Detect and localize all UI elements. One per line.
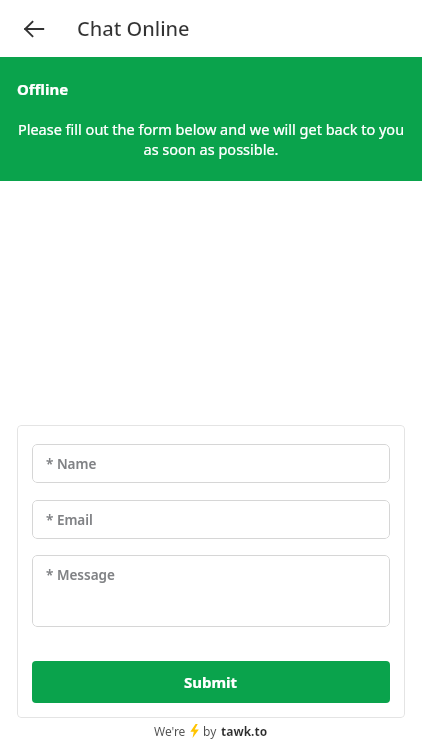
button[interactable]: * Email (32, 500, 390, 539)
button[interactable]: We're (0, 718, 422, 744)
button[interactable]: * Name (32, 444, 390, 483)
button[interactable]: * Message (32, 555, 390, 627)
staticText: Please fill out the form below and we wi… (10, 119, 412, 160)
staticText: by (203, 723, 217, 739)
staticText: Submit (184, 672, 238, 692)
button[interactable]: Back (14, 9, 54, 49)
staticText: Offline (17, 79, 69, 99)
staticText: Chat Online (77, 15, 190, 42)
staticText: * Name (46, 455, 97, 473)
staticText: * Email (46, 511, 93, 529)
staticText: We're (154, 723, 186, 739)
staticText: tawk.to (221, 723, 268, 739)
button[interactable]: Submit (32, 661, 390, 703)
staticText: * Message (46, 566, 115, 584)
